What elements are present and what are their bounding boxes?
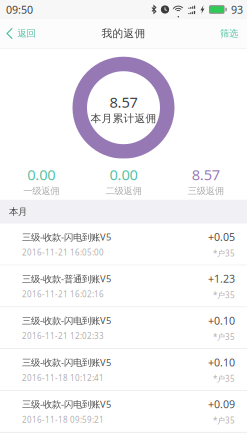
staticText: 三级-收款-闪电到账V5 <box>22 356 111 368</box>
staticText: 8.57 <box>109 92 137 112</box>
staticText: 三级返佣 <box>188 185 224 197</box>
staticText: 0.00 <box>27 165 55 184</box>
button[interactable]: 返回 <box>0 19 43 48</box>
staticText: *户35 <box>213 332 235 342</box>
staticText: 09:50 <box>6 2 33 17</box>
staticText: 2016-11-18 09:59:21 <box>22 414 104 425</box>
staticText: *户35 <box>213 373 235 384</box>
staticText: 二级返佣 <box>105 185 141 197</box>
staticText: 2016-11-21 12:02:33 <box>22 331 104 341</box>
staticText: 93 <box>231 2 243 17</box>
staticText: 8.57 <box>192 165 220 184</box>
button[interactable]: 三级-收款-闪电到账V5 <box>0 349 247 391</box>
staticText: 2016-11-21 16:02:16 <box>22 289 104 299</box>
staticText: *户35 <box>213 248 235 259</box>
button[interactable]: 三级-收款-闪电到账V5 <box>0 307 247 349</box>
staticText: 筛选 <box>220 28 238 39</box>
staticText: +0.05 <box>208 230 235 244</box>
staticText: 三级-收款-闪电到账V5 <box>22 314 111 327</box>
staticText: 本月 <box>9 206 27 217</box>
staticText: 本月累计返佣 <box>90 112 156 125</box>
staticText: +0.10 <box>208 313 235 328</box>
staticText: 三级-收款-闪电到账V5 <box>22 398 111 410</box>
staticText: *户35 <box>213 415 235 426</box>
staticText: +1.23 <box>208 272 235 286</box>
staticText: +0.10 <box>208 355 235 369</box>
staticText: +0.09 <box>208 397 235 411</box>
staticText: 0.00 <box>109 165 137 184</box>
staticText: 返回 <box>17 28 35 39</box>
button[interactable]: 三级-收款-普通到账V5 <box>0 265 247 307</box>
button[interactable]: 筛选 <box>212 19 247 48</box>
staticText: 2016-11-18 10:12:41 <box>22 372 104 383</box>
button[interactable]: 三级-收款-闪电到账V5 <box>0 224 247 265</box>
staticText: 一级返佣 <box>23 185 59 197</box>
staticText: 我的返佣 <box>101 27 145 40</box>
button[interactable]: 三级-收款-闪电到账V5 <box>0 391 247 433</box>
staticText: 三级-收款-普通到账V5 <box>22 272 111 285</box>
staticText: *户35 <box>213 290 235 300</box>
staticText: 2016-11-21 16:05:00 <box>22 247 104 258</box>
staticText: 三级-收款-闪电到账V5 <box>22 231 111 243</box>
